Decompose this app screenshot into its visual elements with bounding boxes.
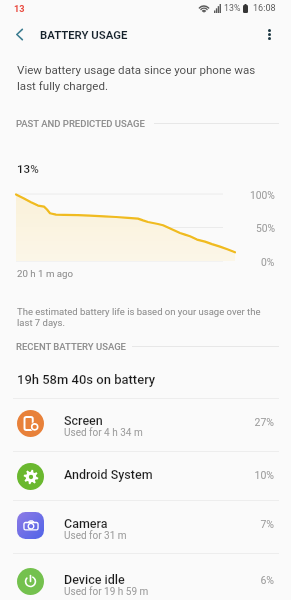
staticText: 100% [250,189,275,201]
staticText: The estimated battery life is based on y… [17,306,261,328]
staticText: RECENT BATTERY USAGE [16,341,126,352]
button[interactable]: Android System [0,451,291,501]
button[interactable]: More options [254,19,285,50]
staticText: 0% [261,256,275,268]
staticText: 13 [14,3,25,14]
staticText: 19h 58m 40s on battery [17,372,156,387]
staticText: 13% [224,3,241,13]
staticText: Camera [64,516,108,531]
staticText: Screen [64,413,103,428]
staticText: 20 h 1 m ago [17,268,74,279]
button[interactable]: Screen [0,398,291,450]
staticText: View battery usage data since your phone… [17,63,256,92]
staticText: Used for 31 m [64,530,127,542]
staticText: Used for 19 h 59 m [64,586,149,598]
staticText: 50% [256,222,276,234]
staticText: 13% [17,162,39,176]
staticText: Android System [64,467,153,482]
staticText: 16:08 [253,3,276,14]
staticText: Device idle [64,572,125,587]
staticText: 10% [0,469,274,481]
button[interactable]: Device idle [0,553,291,600]
staticText: Used for 4 h 34 m [64,427,143,439]
staticText: 6% [0,574,274,586]
staticText: 27% [0,416,274,428]
button[interactable]: Back [4,19,35,50]
staticText: BATTERY USAGE [40,29,128,42]
staticText: 7% [0,518,274,530]
button[interactable]: Camera [0,500,291,553]
staticText: PAST AND PREDICTED USAGE [16,118,145,129]
